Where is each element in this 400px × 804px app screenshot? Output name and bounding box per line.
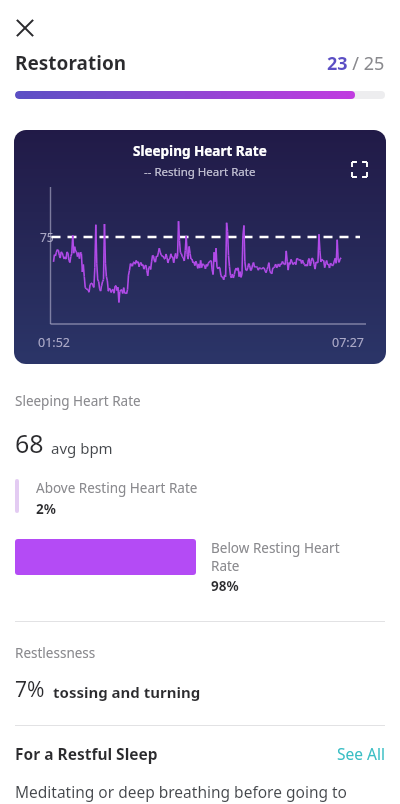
button[interactable]: See All bbox=[337, 743, 385, 764]
staticText: Above Resting Heart Rate bbox=[36, 479, 198, 497]
button[interactable]: Close bbox=[9, 12, 41, 44]
staticText: Sleeping Heart Rate bbox=[133, 142, 267, 160]
staticText: For a Restful Sleep bbox=[15, 743, 158, 764]
staticText: 7% bbox=[15, 675, 45, 704]
staticText: See All bbox=[337, 743, 385, 764]
button[interactable]: Expand chart bbox=[346, 156, 372, 182]
staticText: 01:52 bbox=[38, 334, 70, 351]
staticText: 07:27 bbox=[332, 334, 364, 351]
staticText: -- Resting Heart Rate bbox=[144, 164, 256, 180]
staticText: tossing and turning bbox=[53, 682, 201, 702]
staticText: Meditating or deep breathing before goin… bbox=[15, 781, 387, 804]
staticText: Rate bbox=[211, 557, 240, 575]
staticText: Below Resting Heart bbox=[211, 539, 340, 557]
staticText: Sleeping Heart Rate bbox=[15, 392, 141, 410]
staticText: 98% bbox=[211, 577, 239, 595]
staticText: Restoration bbox=[15, 50, 127, 76]
staticText: Restlessness bbox=[15, 644, 96, 662]
staticText: 68 bbox=[15, 426, 44, 460]
staticText: 2% bbox=[36, 500, 56, 518]
staticText: 75 bbox=[40, 229, 54, 245]
staticText: 23 / 25 bbox=[327, 51, 385, 76]
staticText: avg bpm bbox=[51, 438, 113, 458]
button[interactable]: Sleeping Heart Rate bbox=[14, 130, 386, 364]
